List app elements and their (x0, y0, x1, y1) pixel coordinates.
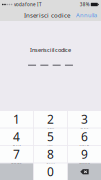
staticText: 8 (47, 146, 54, 162)
staticText: JKL (47, 145, 53, 149)
button[interactable]: 7 (0, 146, 33, 162)
staticText: WXYZ (79, 162, 90, 167)
button[interactable]: 3 (68, 111, 101, 128)
staticText: Inserisci il codice (30, 46, 71, 54)
staticText: 38% (80, 1, 90, 8)
staticText: vodafone IT (14, 1, 42, 8)
button[interactable]: 0 (34, 163, 67, 180)
staticText: 7 (13, 146, 20, 162)
staticText: 6 (81, 128, 88, 145)
staticText: 9 (81, 146, 88, 162)
button[interactable]: Cancella (68, 163, 101, 180)
button[interactable]: 5 (34, 128, 67, 145)
button[interactable]: 2 (34, 111, 67, 128)
staticText: 2 (47, 111, 54, 127)
staticText: Inserisci codice (24, 11, 70, 19)
staticText: 4 (13, 128, 20, 145)
button[interactable]: Annulla (72, 9, 101, 21)
staticText: ABC (47, 127, 54, 132)
staticText: 0 (47, 163, 54, 180)
button[interactable]: 4 (0, 128, 33, 145)
staticText: GHI (12, 145, 20, 149)
staticText: 3 (81, 111, 88, 127)
staticText: TUV (46, 162, 54, 167)
staticText: 5 (47, 128, 54, 145)
button[interactable]: 1 (0, 111, 33, 128)
button[interactable]: 8 (34, 146, 67, 162)
staticText: MNO (79, 145, 89, 149)
button[interactable]: 9 (68, 146, 101, 162)
staticText: 1 (13, 111, 20, 127)
button[interactable]: 6 (68, 128, 101, 145)
staticText: Annulla (76, 11, 97, 19)
staticText: DEF (80, 127, 88, 132)
staticText: PQRS (11, 162, 22, 167)
